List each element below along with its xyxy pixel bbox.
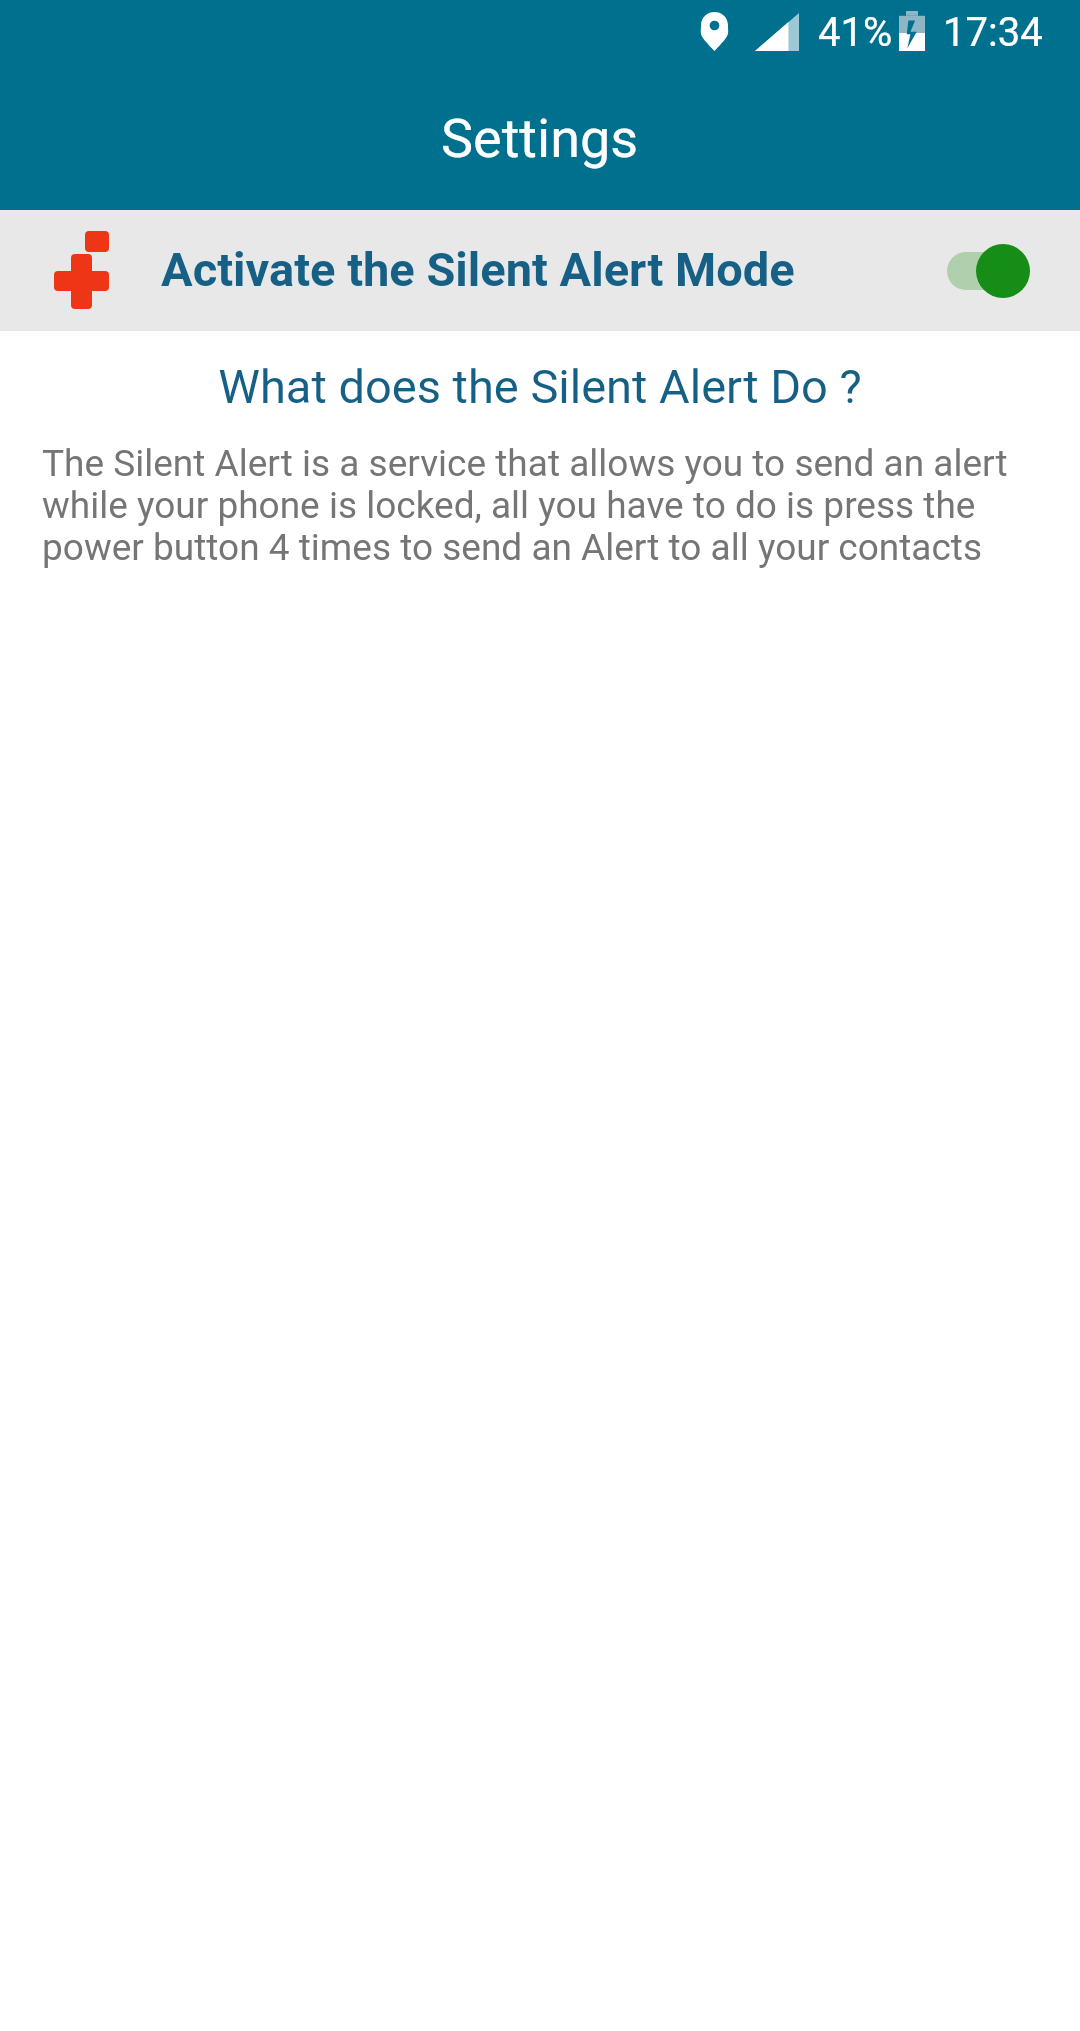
staticText: Activate the Silent Alert Mode bbox=[161, 242, 795, 297]
staticText: Settings bbox=[441, 107, 639, 170]
other: Signal strength bbox=[755, 13, 799, 51]
other: Battery charging bbox=[899, 11, 925, 51]
staticText: 41% bbox=[818, 9, 893, 56]
button[interactable]: Silent alert bbox=[0, 210, 1080, 331]
button[interactable]: Silent Alert Mode, on bbox=[940, 243, 1040, 299]
other: Silent alert bbox=[54, 231, 110, 310]
staticText: What does the Silent Alert Do ? bbox=[0, 359, 1080, 414]
staticText: 17:34 bbox=[943, 9, 1043, 56]
staticText: The Silent Alert is a service that allow… bbox=[42, 442, 1050, 569]
other: Location bbox=[701, 12, 728, 51]
